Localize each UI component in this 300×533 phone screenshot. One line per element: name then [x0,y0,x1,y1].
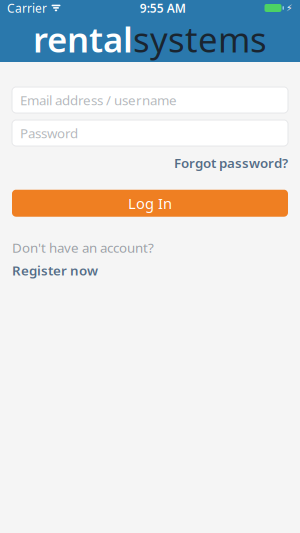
staticText: Email address / username [20,91,177,109]
staticText: Log In [128,193,172,213]
staticText: Carrier [7,0,47,16]
staticText: 9:55 AM [140,0,186,16]
staticText: systems [133,16,267,62]
staticText: Forgot password? [174,154,288,172]
button[interactable]: Register now [12,260,98,280]
staticText: Don't have an account? [12,239,154,256]
staticText: Password [20,124,78,142]
button[interactable]: Forgot password? [174,152,288,174]
staticText: ⚡︎ [286,3,293,13]
staticText: rental [33,16,133,62]
button[interactable]: Log In [12,190,288,217]
staticText: Register now [12,261,98,279]
